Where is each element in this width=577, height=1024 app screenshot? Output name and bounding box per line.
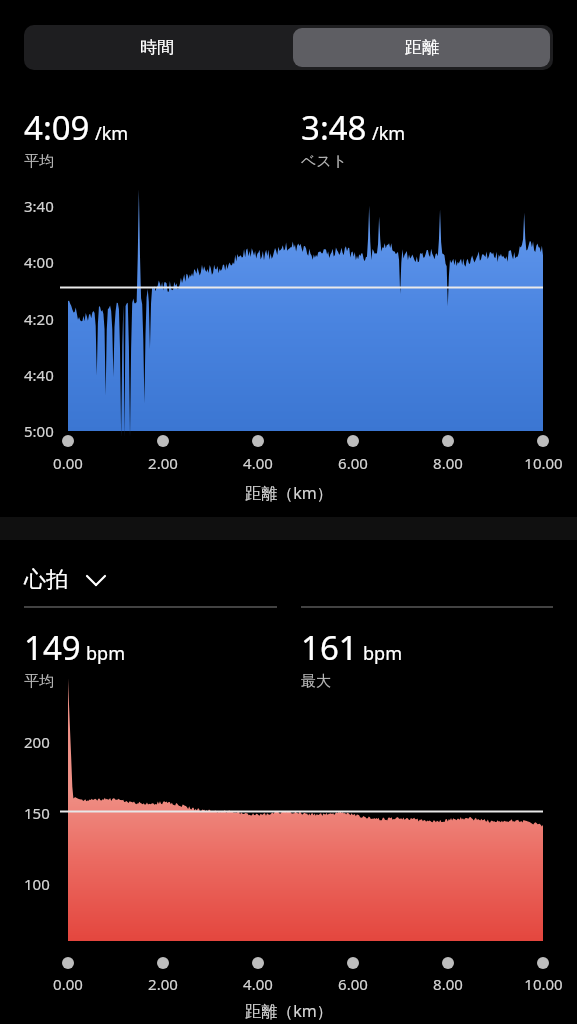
staticText: 3:40	[24, 196, 54, 216]
staticText: 8.00	[433, 453, 463, 473]
staticText: 100	[24, 874, 50, 894]
staticText: 149	[24, 625, 81, 670]
staticText: 2.00	[148, 453, 178, 473]
staticText: 4.00	[243, 453, 273, 473]
staticText: 心拍	[24, 566, 68, 594]
staticText: 距離（km）	[245, 482, 333, 504]
staticText: 4:40	[24, 365, 54, 385]
staticText: 距離	[405, 37, 439, 58]
staticText: 200	[24, 732, 50, 752]
staticText: 10.00	[524, 453, 563, 473]
staticText: bpm	[363, 641, 402, 666]
staticText: 8.00	[433, 974, 463, 994]
staticText: 4.00	[243, 974, 273, 994]
staticText: /km	[95, 121, 129, 146]
staticText: 6.00	[338, 453, 368, 473]
staticText: 0.00	[53, 453, 83, 473]
staticText: 3:48	[301, 105, 367, 150]
staticText: /km	[372, 121, 406, 146]
staticText: 10.00	[524, 974, 563, 994]
staticText: 4:09	[24, 105, 90, 150]
staticText: 時間	[140, 37, 174, 58]
staticText: 5:00	[24, 421, 54, 441]
staticText: 最大	[301, 672, 331, 691]
staticText: ベスト	[301, 152, 348, 171]
staticText: 平均	[24, 672, 54, 691]
staticText: 0.00	[53, 974, 83, 994]
staticText: 4:00	[24, 252, 54, 272]
staticText: 150	[24, 803, 50, 823]
staticText: 4:20	[24, 309, 54, 329]
button[interactable]: 距離	[291, 26, 552, 69]
staticText: 平均	[24, 152, 54, 171]
button[interactable]: 心拍	[20, 562, 130, 602]
button[interactable]: 時間	[24, 25, 289, 70]
staticText: 6.00	[338, 974, 368, 994]
staticText: bpm	[86, 641, 125, 666]
staticText: 2.00	[148, 974, 178, 994]
staticText: 距離（km）	[245, 1000, 333, 1022]
staticText: 161	[301, 625, 358, 670]
